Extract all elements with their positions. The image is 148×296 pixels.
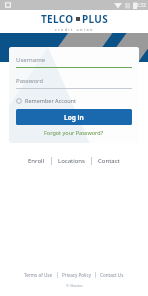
staticText: 2:32 (136, 2, 146, 9)
button[interactable]: Terms of Use (20, 270, 57, 280)
staticText: Contact Us (100, 272, 124, 278)
staticText: Forgot your Password? (44, 129, 104, 136)
button[interactable]: Privacy Policy (58, 270, 95, 280)
button[interactable]: Contact Us (96, 270, 128, 280)
staticText: Locations (58, 157, 85, 165)
staticText: TELCO (41, 12, 74, 26)
button[interactable]: Log in (16, 109, 132, 125)
button[interactable]: Remember Account (16, 97, 132, 104)
staticText: credit union (55, 27, 94, 32)
staticText: Remember Account (25, 97, 77, 104)
staticText: Terms of Use (24, 272, 53, 278)
button[interactable]: Contact (92, 155, 126, 167)
staticText: Password (16, 77, 44, 85)
staticText: Username (16, 56, 46, 64)
staticText: PLUS (82, 12, 108, 26)
button[interactable]: Enroll (22, 155, 51, 167)
button[interactable]: Forgot your Password? (16, 129, 132, 136)
staticText: Contact (98, 157, 120, 165)
staticText: Enroll (28, 157, 45, 165)
button[interactable]: Username (16, 56, 132, 68)
staticText: Privacy Policy (62, 272, 91, 278)
button[interactable]: Locations (52, 155, 91, 167)
staticText: Log in (64, 113, 84, 122)
button[interactable]: Password (16, 77, 132, 89)
staticText: © Shastec (66, 283, 83, 288)
